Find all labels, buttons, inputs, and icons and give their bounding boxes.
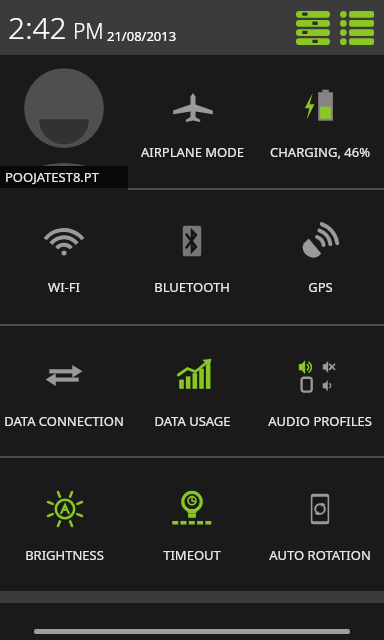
staticText: AUTO ROTATION xyxy=(269,546,371,564)
button[interactable]: Profile POOJATEST8.PT xyxy=(0,55,128,188)
staticText: GPS xyxy=(308,278,333,296)
staticText: 21/08/2013 xyxy=(107,27,177,45)
staticText: 2:42 xyxy=(8,7,67,48)
button[interactable]: GPS xyxy=(256,190,384,324)
staticText: DATA USAGE xyxy=(154,412,231,430)
button[interactable]: Toggles xyxy=(296,11,330,45)
button[interactable]: CHARGING, 46% xyxy=(256,55,384,188)
staticText: POOJATEST8.PT xyxy=(5,168,99,186)
staticText: WI-FI xyxy=(48,278,80,296)
button[interactable]: DATA CONNECTION xyxy=(0,326,128,456)
staticText: AIRPLANE MODE xyxy=(141,143,244,161)
staticText: TIMEOUT xyxy=(163,546,221,564)
button[interactable]: BRIGHTNESS xyxy=(0,458,128,591)
staticText: BLUETOOTH xyxy=(154,278,230,296)
button[interactable]: Drag handle xyxy=(34,629,350,634)
button[interactable]: AUDIO PROFILES xyxy=(256,326,384,456)
button[interactable]: DATA USAGE xyxy=(128,326,256,456)
button[interactable]: BLUETOOTH xyxy=(128,190,256,324)
button[interactable]: AIRPLANE MODE xyxy=(128,55,256,188)
staticText: AUDIO PROFILES xyxy=(268,412,372,430)
staticText: PM xyxy=(73,17,104,46)
button[interactable]: TIMEOUT xyxy=(128,458,256,591)
button[interactable]: WI-FI xyxy=(0,190,128,324)
button[interactable]: List xyxy=(340,11,374,45)
staticText: BRIGHTNESS xyxy=(25,546,104,564)
staticText: DATA CONNECTION xyxy=(4,412,124,430)
staticText: CHARGING, 46% xyxy=(270,143,370,161)
button[interactable]: AUTO ROTATION xyxy=(256,458,384,591)
